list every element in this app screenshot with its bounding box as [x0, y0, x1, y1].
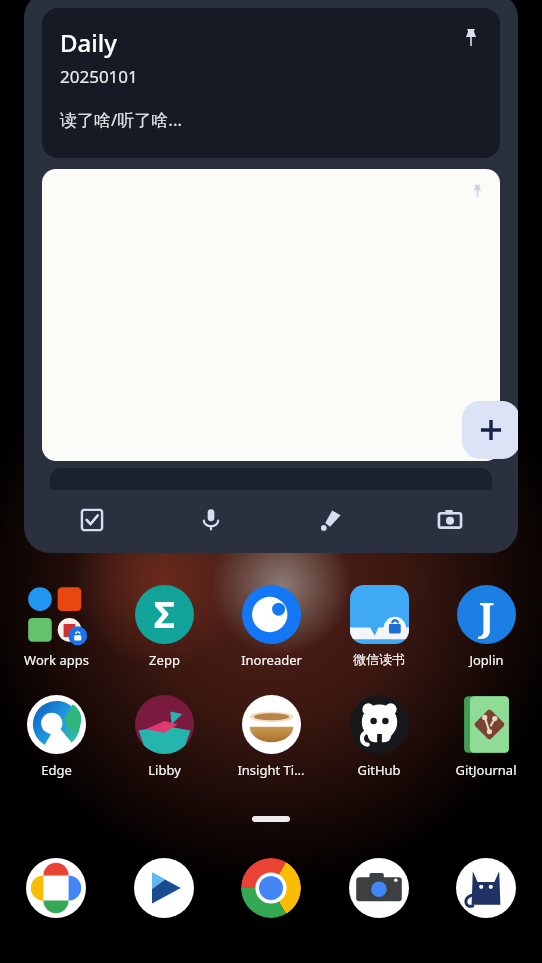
button[interactable]: Drawing note: [309, 498, 353, 542]
button[interactable]: Pin note: [454, 20, 488, 54]
staticText: Edge: [41, 761, 72, 779]
staticText: 20250101: [60, 65, 138, 88]
button[interactable]: Pin: [464, 177, 490, 203]
staticText: Σ: [154, 590, 175, 639]
staticText: 微信读书: [353, 651, 405, 667]
button[interactable]: Inoreader: [221, 583, 321, 671]
button[interactable]: Cat app: [436, 858, 536, 938]
button[interactable]: GitJournal: [436, 693, 536, 781]
staticText: GitJournal: [455, 761, 517, 779]
staticText: Work apps: [24, 651, 89, 669]
button[interactable]: Camera: [329, 858, 429, 938]
staticText: Zepp: [149, 651, 180, 669]
staticText: Libby: [148, 761, 181, 779]
button[interactable]: Google Photos: [6, 858, 106, 938]
button[interactable]: J: [436, 583, 536, 671]
button[interactable]: Σ: [114, 583, 214, 671]
button[interactable]: Voice note: [189, 498, 233, 542]
button[interactable]: Work apps: [6, 583, 106, 671]
button[interactable]: Photo note: [428, 498, 472, 542]
staticText: Inoreader: [241, 651, 302, 669]
button[interactable]: Pin: [42, 169, 500, 461]
staticText: Daily: [60, 26, 117, 59]
staticText: Joplin: [469, 651, 504, 669]
staticText: 读了啥/听了啥...: [60, 108, 182, 131]
staticText: Insight Ti...: [237, 761, 305, 779]
staticText: J: [479, 589, 495, 641]
button[interactable]: Play Movies: [114, 858, 214, 938]
button[interactable]: Add note: [462, 401, 518, 459]
button[interactable]: Insight Ti...: [221, 693, 321, 781]
button[interactable]: New checklist: [70, 498, 114, 542]
button[interactable]: Chrome: [221, 858, 321, 938]
button[interactable]: GitHub: [329, 693, 429, 781]
button[interactable]: Daily: [24, 0, 518, 553]
button[interactable]: Edge: [6, 693, 106, 781]
button[interactable]: Libby: [114, 693, 214, 781]
button[interactable]: Daily: [42, 8, 500, 158]
button[interactable]: 微信读书: [329, 583, 429, 669]
staticText: GitHub: [357, 761, 401, 779]
